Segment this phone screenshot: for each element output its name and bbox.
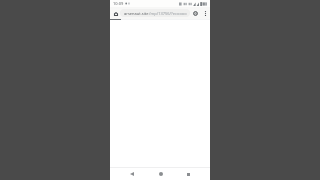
- staticText: 10:09: [113, 1, 124, 6]
- button[interactable]: Home: [154, 168, 167, 180]
- button[interactable]: arsenaut.site: [120, 9, 190, 17]
- staticText: arsenaut.site: [124, 11, 149, 16]
- staticText: /mp/13756/?ecoooo: [149, 11, 187, 16]
- button[interactable]: Back: [125, 168, 138, 180]
- button[interactable]: Home: [111, 8, 120, 19]
- button[interactable]: Recent apps: [182, 168, 195, 180]
- button[interactable]: Page info: [190, 8, 200, 19]
- button[interactable]: More options: [200, 8, 210, 19]
